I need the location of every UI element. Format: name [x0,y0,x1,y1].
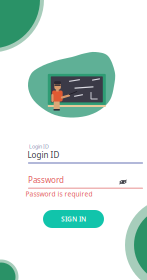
button[interactable]: Show password [116,175,130,189]
staticText: Password is required [25,190,92,198]
staticText: Password [28,175,64,185]
staticText: Login ID [27,150,59,160]
staticText: SIGN IN [61,215,86,223]
staticText: Login ID [29,143,49,150]
button[interactable]: SIGN IN [43,210,104,228]
button[interactable]: Password [14,172,147,200]
button[interactable]: Login ID [14,137,147,167]
